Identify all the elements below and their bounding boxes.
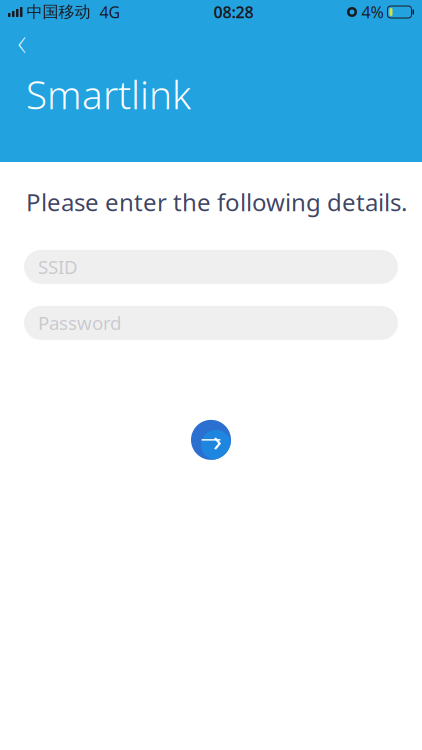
staticText: 4G: [99, 1, 120, 23]
staticText: ‹: [17, 14, 26, 67]
button[interactable]: Next: [191, 420, 231, 460]
staticText: 08:28: [213, 1, 253, 23]
staticText: Password: [38, 310, 121, 335]
staticText: Please enter the following details.: [26, 186, 407, 218]
staticText: ›: [213, 420, 222, 459]
button[interactable]: Back: [0, 24, 44, 58]
staticText: 中国移动: [26, 2, 90, 22]
staticText: SSID: [38, 254, 78, 279]
staticText: 4%: [361, 1, 383, 23]
staticText: Smartlink: [26, 69, 191, 120]
